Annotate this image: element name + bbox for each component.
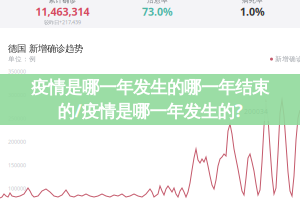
staticText: 单位：例 [8, 55, 36, 63]
staticText: 200000 [8, 138, 26, 145]
staticText: 150000 [8, 161, 26, 169]
staticText: 1.0% [240, 4, 265, 19]
staticText: 的/疫情是哪一年发生的? [57, 99, 242, 122]
staticText: 治愈率 [147, 0, 168, 4]
staticText: 73.0% [142, 4, 173, 19]
staticText: 100000 [8, 185, 26, 192]
staticText: 病死率 [242, 0, 263, 4]
staticText: 200034 [244, 107, 268, 116]
staticText: 350000 [8, 68, 26, 75]
staticText: 新增确诊 [275, 55, 300, 63]
staticText: 疫情是哪一年发生的哪一年结束 [31, 77, 269, 98]
staticText: 较昨日+217,439 [44, 19, 81, 26]
staticText: 累计确诊 [48, 0, 76, 4]
staticText: 德国 新增确诊趋势 [8, 43, 83, 54]
staticText: 11,463,314 [35, 4, 89, 19]
